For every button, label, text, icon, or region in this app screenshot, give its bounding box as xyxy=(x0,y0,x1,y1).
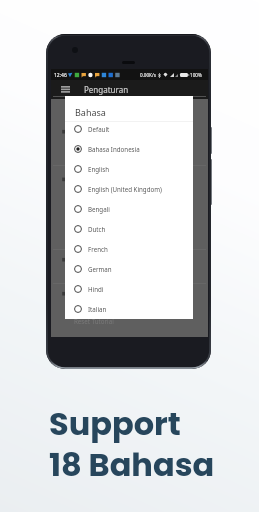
staticText: German xyxy=(88,265,112,273)
staticText: Dutch xyxy=(88,225,106,233)
button[interactable]: Italian xyxy=(65,299,193,319)
button[interactable]: Dutch xyxy=(65,219,193,239)
staticText: French xyxy=(88,245,108,253)
staticText: Bengali xyxy=(88,205,110,213)
staticText: Reset Tutorial xyxy=(74,317,114,325)
staticText: Pengaturan xyxy=(84,84,129,95)
staticText: Bahasa Indonesia xyxy=(88,145,140,153)
button[interactable]: German xyxy=(65,259,193,279)
staticText: 0.00K/s xyxy=(140,72,156,78)
button[interactable]: Hindi xyxy=(65,279,193,299)
staticText: Hindi xyxy=(88,285,104,293)
staticText: English xyxy=(88,165,110,173)
staticText: 100% xyxy=(190,72,202,78)
staticText: Bahasa xyxy=(75,106,106,118)
staticText: Italian xyxy=(88,305,107,313)
button[interactable]: English xyxy=(65,159,193,179)
staticText: English (United Kingdom) xyxy=(88,185,162,193)
staticText: 12:46 xyxy=(54,72,67,79)
button[interactable]: Open navigation menu xyxy=(61,86,70,93)
button[interactable]: Bahasa Indonesia xyxy=(65,139,193,159)
staticText: Default xyxy=(88,125,110,133)
button[interactable]: Default xyxy=(65,119,193,139)
staticText: Support 18 Bahasa xyxy=(49,401,215,487)
button[interactable]: English (United Kingdom) xyxy=(65,179,193,199)
button[interactable]: Bengali xyxy=(65,199,193,219)
button[interactable]: French xyxy=(65,239,193,259)
